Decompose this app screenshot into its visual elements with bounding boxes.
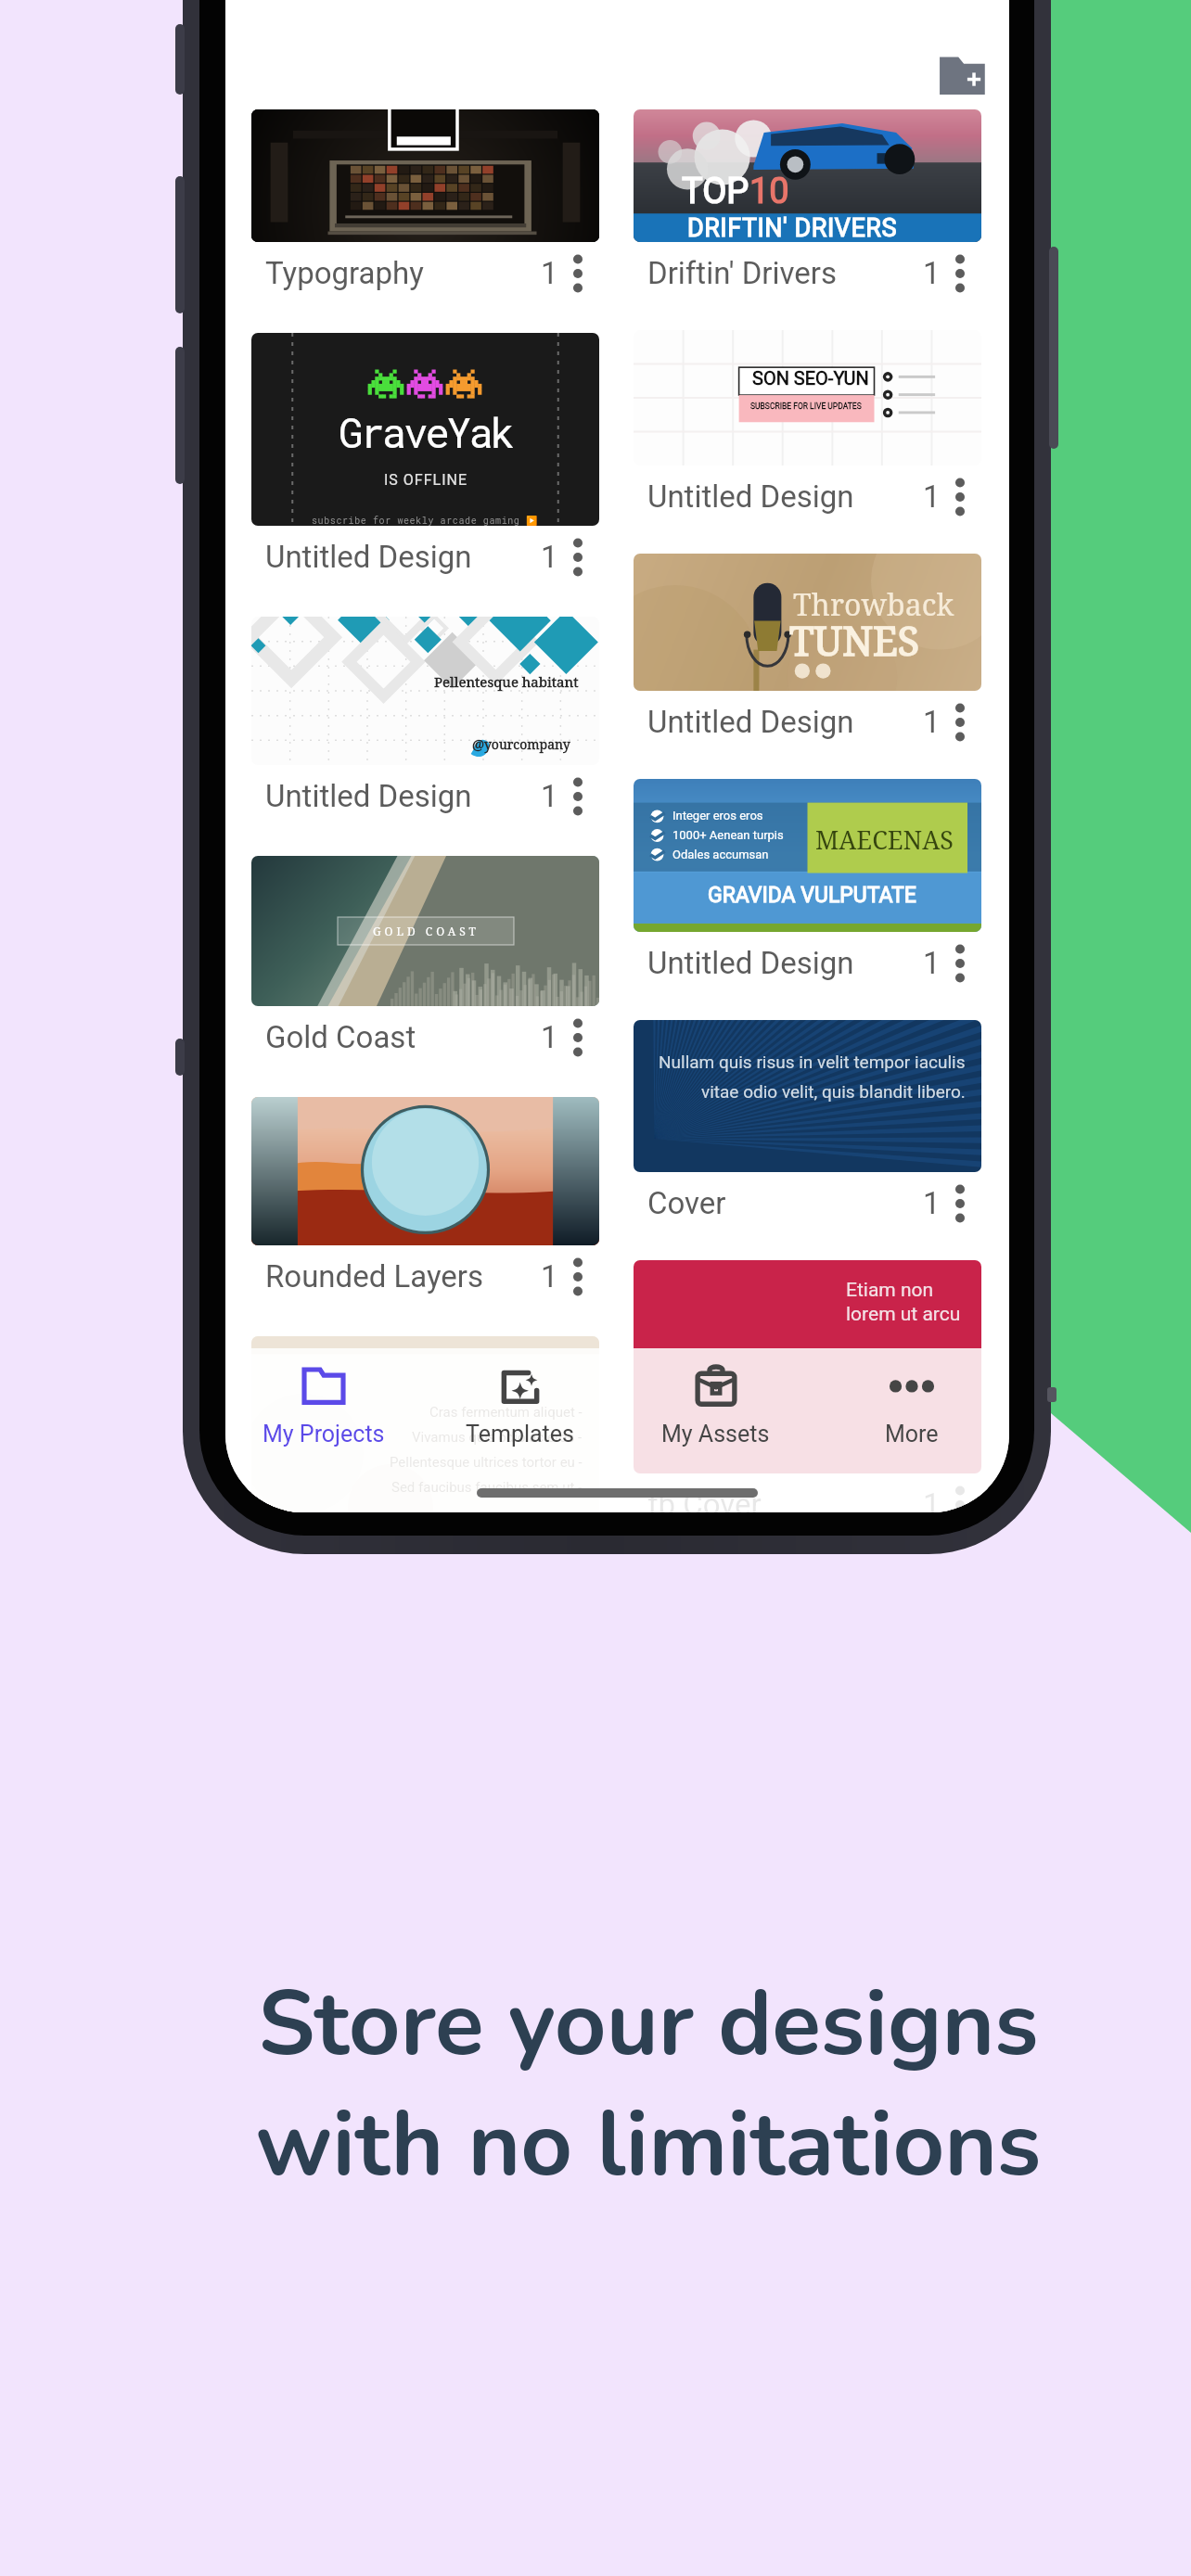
staticText: 1 xyxy=(923,1486,941,1512)
staticText: DRIFTIN' DRIVERS xyxy=(687,213,897,242)
staticText: 1 xyxy=(541,1258,558,1294)
button[interactable]: More options xyxy=(558,531,597,583)
button[interactable]: Cras fermentum aliquet - xyxy=(245,1330,606,1512)
staticText: TUNES xyxy=(789,613,920,668)
staticText: Typography xyxy=(265,255,424,291)
staticText: Cover xyxy=(647,1185,726,1221)
staticText: Untitled Design xyxy=(647,478,854,515)
staticText: SON SEO-YUN xyxy=(752,367,869,389)
staticText: Gold Coast xyxy=(265,1019,416,1055)
staticText: Sed faucibus faucibus sem ut - xyxy=(391,1479,583,1496)
staticText: Throwback xyxy=(793,584,954,625)
button[interactable]: More options xyxy=(941,1479,980,1512)
staticText: IS OFFLINE xyxy=(384,471,467,489)
button[interactable]: More options xyxy=(941,937,980,989)
staticText: Untitled Design xyxy=(647,704,854,740)
staticText: Integer eros eros xyxy=(672,809,763,823)
button[interactable]: More options xyxy=(558,248,597,300)
button[interactable]: Nullam quis risus in velit tempor iaculi… xyxy=(627,1014,988,1234)
button[interactable]: Throwback xyxy=(627,547,988,753)
staticText: 1 xyxy=(923,1185,941,1221)
staticText: GRAVIDA VULPUTATE xyxy=(708,883,916,908)
staticText: Rounded Layers xyxy=(265,1258,484,1294)
staticText: 1 xyxy=(923,945,941,981)
button[interactable]: More options xyxy=(558,1251,597,1303)
button[interactable]: More options xyxy=(941,471,980,523)
button[interactable]: Create folder xyxy=(923,26,1001,104)
staticText: 1 xyxy=(541,778,558,814)
staticText: Untitled Design xyxy=(265,539,472,575)
staticText: SUBSCRIBE FOR LIVE UPDATES xyxy=(750,402,862,411)
button[interactable]: Templates xyxy=(422,1348,618,1469)
staticText: GraveYak xyxy=(339,405,513,459)
staticText: 1 xyxy=(541,1019,558,1055)
staticText: TOP xyxy=(682,171,749,212)
staticText: Odales accumsan xyxy=(672,848,769,861)
button[interactable]: SON SEO-YUN xyxy=(627,324,988,528)
staticText: Driftin' Drivers xyxy=(647,255,838,291)
staticText: Store your designs with no limitations xyxy=(53,1963,1191,2207)
staticText: My Assets xyxy=(661,1421,770,1447)
button[interactable]: More options xyxy=(558,1012,597,1064)
staticText: More xyxy=(885,1421,939,1447)
staticText: Vivamus quis odio ac eros - xyxy=(412,1429,583,1446)
staticText: Nullam quis risus in velit tempor iaculi… xyxy=(659,1052,966,1072)
staticText: vitae odio velit, quis blandit libero. xyxy=(701,1081,966,1102)
button[interactable]: More xyxy=(813,1348,1009,1469)
staticText: MAECENAS xyxy=(815,823,954,857)
staticText: 1 xyxy=(923,478,941,515)
staticText: Pellentesque ultrices tortor eu - xyxy=(390,1454,583,1471)
button[interactable]: More options xyxy=(558,771,597,823)
button[interactable]: Pellentesque habitant xyxy=(245,610,606,827)
button[interactable]: More options xyxy=(941,696,980,748)
staticText: GOLD COAST xyxy=(373,924,480,938)
staticText: Untitled Design xyxy=(265,778,472,814)
button[interactable]: Etiam non xyxy=(627,1254,988,1512)
button[interactable]: Typography xyxy=(245,103,606,304)
button[interactable]: GraveYak xyxy=(245,326,606,588)
staticText: Untitled Design xyxy=(647,945,854,981)
staticText: lorem ut arcu xyxy=(846,1303,961,1326)
button[interactable]: GOLD COAST xyxy=(245,849,606,1068)
staticText: 1 xyxy=(541,255,558,291)
staticText: @yourcompany xyxy=(472,735,570,753)
staticText: 1 xyxy=(541,539,558,575)
staticText: fb Cover xyxy=(647,1486,762,1512)
staticText: 1000+ Aenean turpis xyxy=(672,828,784,842)
staticText: 10 xyxy=(749,171,789,212)
staticText: 1 xyxy=(923,255,941,291)
staticText: My Projects xyxy=(263,1421,385,1447)
button[interactable]: My Projects xyxy=(225,1348,422,1469)
button[interactable]: Integer eros eros xyxy=(627,772,988,994)
button[interactable]: My Assets xyxy=(618,1348,813,1469)
button[interactable]: More options xyxy=(941,1178,980,1230)
staticText: Pellentesque habitant xyxy=(434,672,579,691)
staticText: subscribe for weekly arcade gaming ▶ xyxy=(312,515,539,526)
button[interactable]: More options xyxy=(941,248,980,300)
button[interactable]: TOP xyxy=(627,103,988,304)
staticText: Etiam non xyxy=(846,1279,934,1302)
staticText: Cras fermentum aliquet - xyxy=(429,1404,583,1421)
staticText: Templates xyxy=(466,1421,574,1447)
staticText: 1 xyxy=(923,704,941,740)
button[interactable]: Rounded Layers xyxy=(245,1090,606,1307)
